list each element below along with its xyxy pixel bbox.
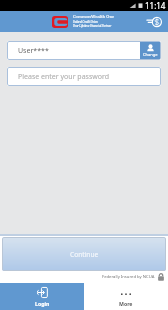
button[interactable]: Continue xyxy=(2,237,166,271)
staticText: Federally Insured by NCUA xyxy=(102,274,155,280)
staticText: User**** xyxy=(18,46,49,56)
staticText: Continue xyxy=(70,250,99,259)
button[interactable]: Rates xyxy=(145,13,163,31)
staticText: Please enter your password xyxy=(18,72,110,82)
staticText: Your Lifetime Financial Partner xyxy=(73,24,112,28)
staticText: 11:14 xyxy=(145,0,166,11)
staticText: Change xyxy=(143,52,158,57)
staticText: Login xyxy=(35,300,50,307)
staticText: CommonWealth One xyxy=(73,14,115,20)
button[interactable]: Login xyxy=(0,283,84,310)
staticText: Federal Credit Union xyxy=(73,20,98,24)
button[interactable]: More xyxy=(84,283,168,310)
staticText: More xyxy=(119,300,133,307)
button[interactable]: User**** xyxy=(7,41,161,60)
button[interactable]: Change xyxy=(140,42,160,59)
button[interactable]: Please enter your password xyxy=(7,67,161,86)
